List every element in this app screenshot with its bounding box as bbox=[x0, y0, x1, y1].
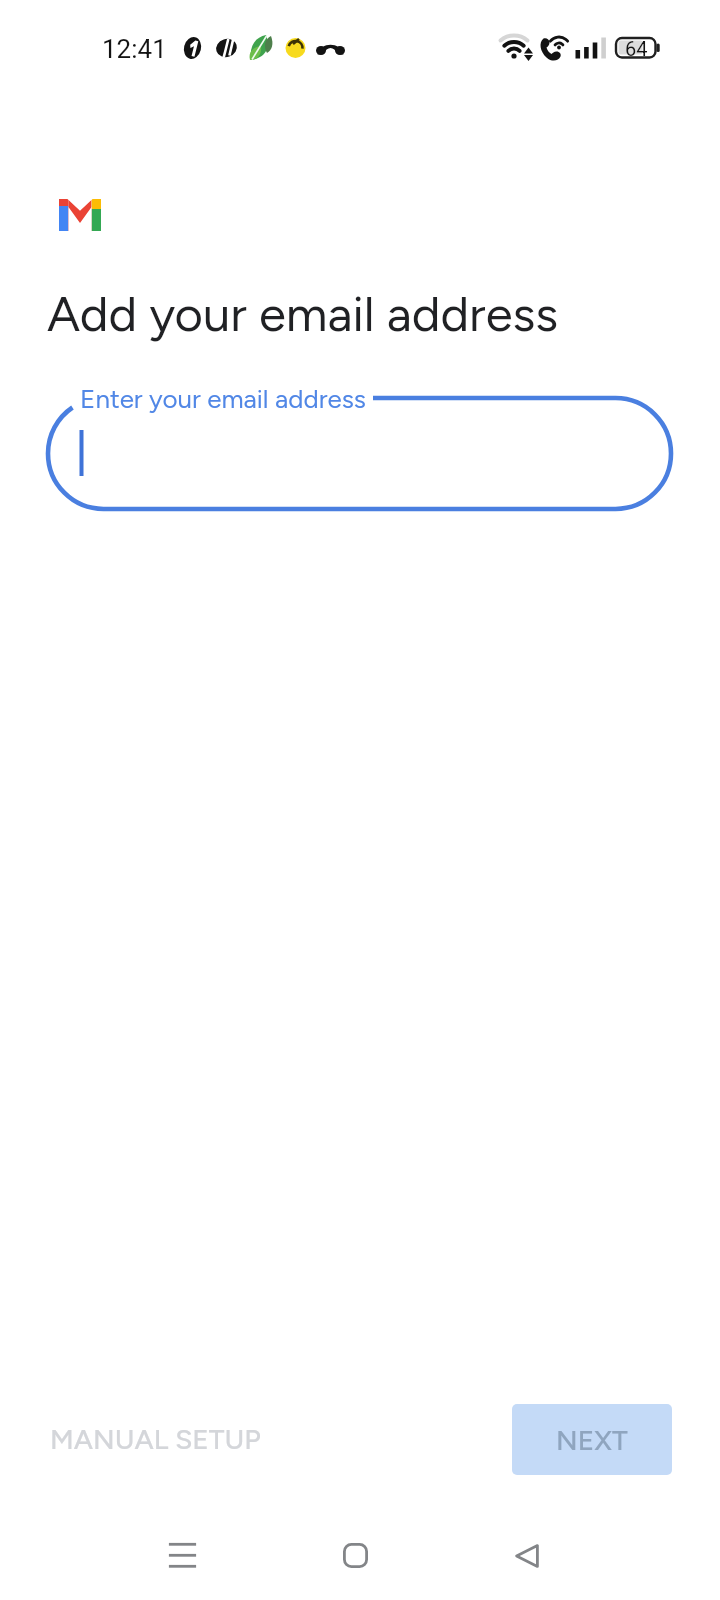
staticText: MANUAL SETUP bbox=[50, 1422, 261, 1456]
staticText: 12:41 bbox=[102, 34, 167, 64]
staticText: Add your email address bbox=[47, 284, 559, 343]
button[interactable]: MANUAL SETUP bbox=[18, 1398, 293, 1480]
button[interactable]: Home bbox=[311, 1511, 400, 1600]
staticText: 64 bbox=[625, 37, 648, 60]
button[interactable]: Back bbox=[482, 1511, 571, 1600]
button[interactable]: Recents bbox=[138, 1511, 227, 1600]
staticText: Enter your email address bbox=[80, 383, 366, 414]
staticText: NEXT bbox=[556, 1423, 628, 1457]
button[interactable]: NEXT bbox=[512, 1404, 672, 1475]
button[interactable] bbox=[48, 398, 671, 509]
other: Gmail bbox=[59, 199, 101, 231]
